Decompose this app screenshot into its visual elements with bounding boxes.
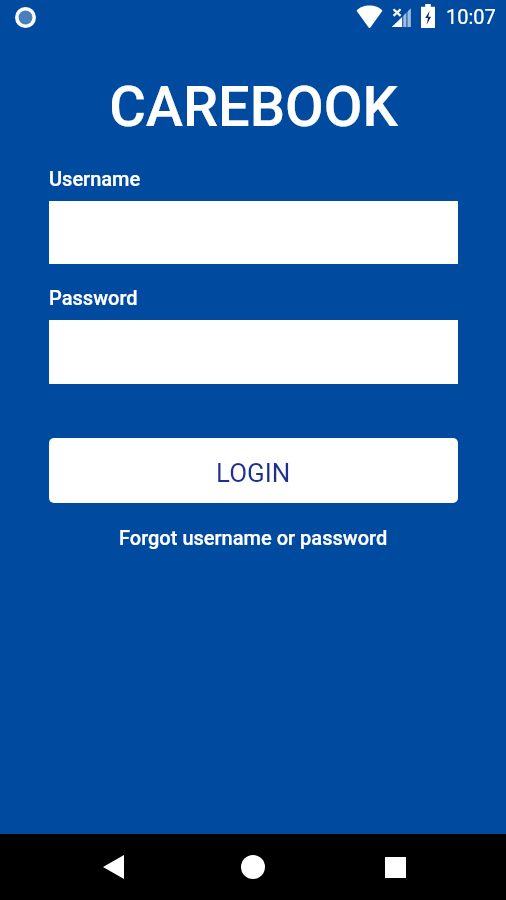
staticText: CAREBOOK [109, 74, 398, 140]
staticText: LOGIN [216, 458, 291, 488]
other: Notification [15, 7, 36, 28]
button[interactable]: Back [85, 839, 141, 895]
button[interactable]: LOGIN [49, 438, 458, 503]
button[interactable]: Recent apps [367, 839, 423, 895]
button[interactable]: Forgot username or password [119, 526, 388, 549]
staticText: Username [49, 167, 141, 190]
button[interactable]: Home [225, 839, 281, 895]
staticText: Password [49, 286, 138, 309]
staticText: Forgot username or password [119, 526, 388, 549]
staticText: 10:07 [446, 5, 496, 28]
